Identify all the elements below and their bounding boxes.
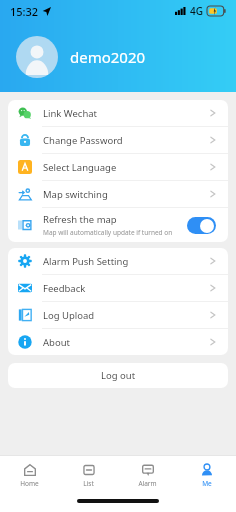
button[interactable]: Select Language bbox=[8, 154, 228, 180]
button[interactable]: Log Upload bbox=[8, 302, 228, 328]
staticText: Map will automatically update if turned … bbox=[43, 228, 173, 237]
button[interactable]: Alarm Push Setting bbox=[8, 248, 228, 274]
staticText: Map switching bbox=[43, 188, 108, 201]
staticText: 15:32 bbox=[10, 4, 39, 19]
button[interactable]: Me bbox=[177, 456, 236, 494]
button[interactable]: Refresh the map bbox=[8, 208, 228, 242]
staticText: Me bbox=[202, 479, 212, 488]
staticText: Log out bbox=[101, 369, 136, 382]
button[interactable]: About bbox=[8, 329, 228, 355]
staticText: Log Upload bbox=[43, 309, 95, 322]
button[interactable]: Home bbox=[0, 456, 59, 494]
staticText: Home bbox=[20, 479, 39, 488]
button[interactable]: List bbox=[59, 456, 118, 494]
staticText: About bbox=[43, 336, 70, 349]
button[interactable]: Link Wechat bbox=[8, 100, 228, 126]
button[interactable]: Alarm bbox=[118, 456, 177, 494]
button[interactable]: Feedback bbox=[8, 275, 228, 301]
staticText: Alarm Push Setting bbox=[43, 255, 129, 268]
staticText: List bbox=[83, 479, 94, 488]
staticText: Feedback bbox=[43, 282, 86, 295]
staticText: demo2020 bbox=[70, 47, 146, 67]
staticText: Refresh the map bbox=[43, 213, 117, 226]
staticText: Change Password bbox=[43, 134, 123, 147]
button[interactable]: Change Password bbox=[8, 127, 228, 153]
staticText: Link Wechat bbox=[43, 107, 98, 120]
button[interactable]: Log out bbox=[8, 363, 228, 388]
button[interactable]: Map switching bbox=[8, 181, 228, 207]
staticText: 4G bbox=[190, 4, 203, 18]
staticText: Select Language bbox=[43, 161, 117, 174]
staticText: Alarm bbox=[138, 479, 157, 488]
button[interactable]: Refresh the map toggle bbox=[187, 217, 216, 234]
